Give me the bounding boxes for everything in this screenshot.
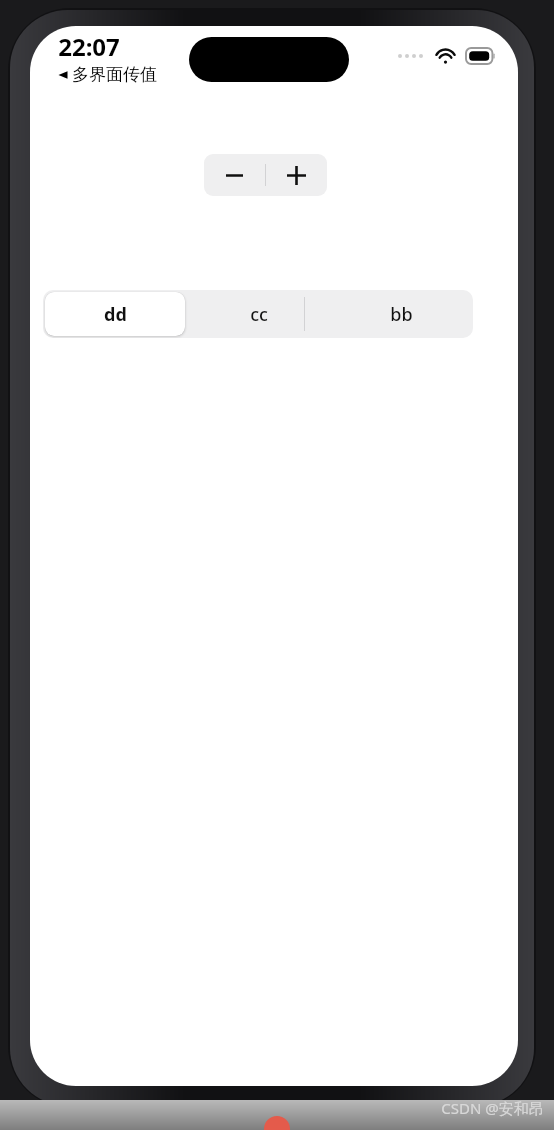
staticText: dd — [104, 302, 127, 327]
staticText: 多界面传值 — [72, 64, 157, 85]
button[interactable]: bb — [330, 290, 473, 338]
button[interactable]: Increase — [266, 154, 327, 196]
staticText: CSDN @安和昂 — [441, 1098, 544, 1118]
button[interactable]: Decrease — [204, 154, 265, 196]
staticText: 22:07 — [58, 30, 120, 63]
button[interactable]: cc — [187, 290, 330, 338]
staticText: bb — [390, 302, 413, 327]
button[interactable]: dd — [45, 292, 185, 336]
staticText: cc — [250, 302, 268, 327]
